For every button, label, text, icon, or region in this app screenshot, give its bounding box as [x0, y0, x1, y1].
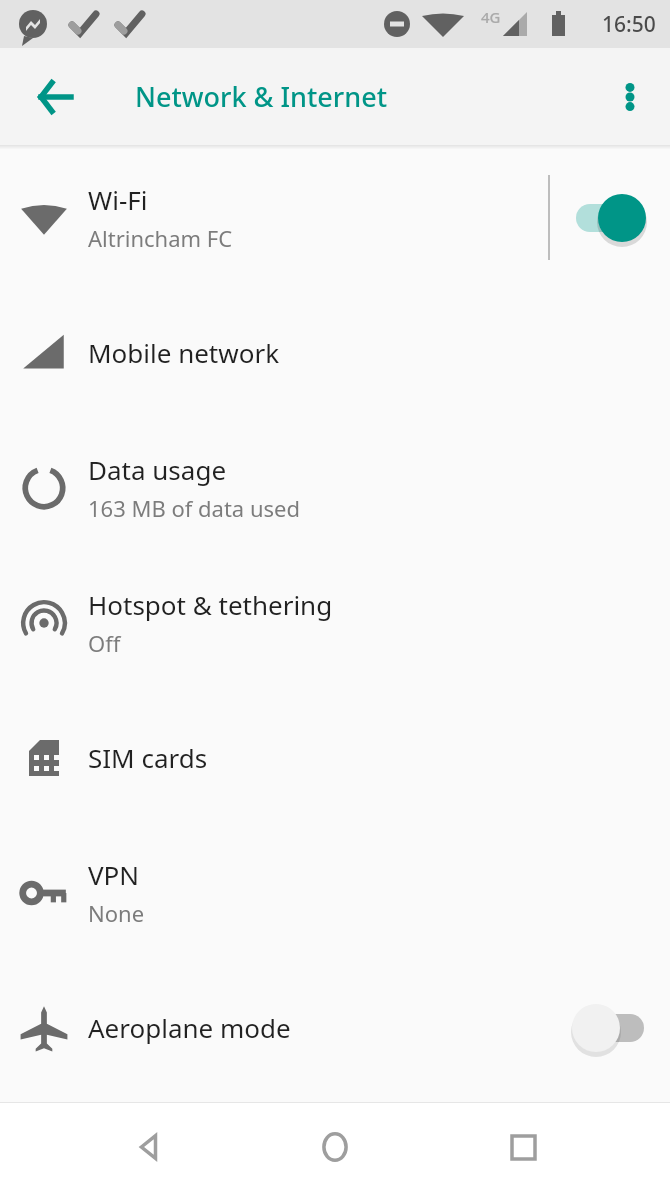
staticText: Network & Internet — [135, 78, 388, 115]
button[interactable]: Aeroplane mode off — [550, 960, 670, 1095]
staticText: 163 MB of data used — [88, 493, 300, 523]
button[interactable]: Data usage — [0, 420, 670, 555]
button[interactable]: Home — [295, 1107, 375, 1187]
staticText: None — [88, 898, 145, 928]
button[interactable]: Back — [108, 1107, 188, 1187]
staticText: SIM cards — [88, 740, 208, 775]
staticText: Off — [88, 628, 121, 658]
staticText: Hotspot & tethering — [88, 587, 333, 622]
button[interactable]: Wi-Fi — [0, 150, 670, 285]
staticText: Mobile network — [88, 335, 280, 370]
button[interactable]: Aeroplane mode — [0, 960, 670, 1095]
staticText: 4G — [481, 7, 501, 27]
button[interactable]: Back — [25, 68, 82, 125]
button[interactable]: More options — [602, 69, 658, 125]
staticText: 16:50 — [602, 10, 656, 39]
staticText: Aeroplane mode — [88, 1010, 291, 1045]
staticText: Altrincham FC — [88, 223, 233, 253]
button[interactable]: Mobile network — [0, 285, 670, 420]
button[interactable]: Wi-Fi on — [550, 150, 670, 285]
staticText: VPN — [88, 857, 140, 892]
staticText: Wi-Fi — [88, 182, 148, 217]
button[interactable]: VPN — [0, 825, 670, 960]
button[interactable]: Recents — [483, 1107, 563, 1187]
staticText: Data usage — [88, 452, 227, 487]
button[interactable]: Hotspot & tethering — [0, 555, 670, 690]
button[interactable]: SIM cards — [0, 690, 670, 825]
